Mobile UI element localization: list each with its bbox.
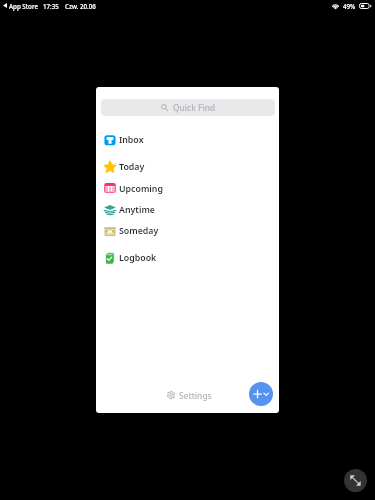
staticText: Anytime — [119, 204, 155, 216]
staticText: Inbox — [119, 134, 144, 146]
button[interactable]: Resize window — [344, 469, 367, 492]
button[interactable]: Quick Find — [101, 99, 275, 116]
button[interactable]: Upcoming — [96, 178, 279, 199]
staticText: Quick Find — [173, 102, 216, 113]
staticText: Settings — [179, 390, 212, 401]
staticText: Upcoming — [119, 183, 163, 195]
button[interactable]: Someday — [96, 220, 279, 241]
staticText: Czw. 20.06 — [65, 2, 96, 10]
button[interactable]: Settings — [167, 386, 212, 404]
staticText: Someday — [119, 225, 159, 237]
button[interactable]: Today — [96, 156, 279, 177]
button[interactable]: Logbook — [96, 247, 279, 268]
button[interactable]: Anytime — [96, 199, 279, 220]
staticText: App Store — [9, 2, 38, 10]
button[interactable]: Inbox — [96, 129, 279, 150]
button[interactable]: New to-do — [249, 382, 273, 406]
staticText: 17:35 — [43, 2, 59, 10]
staticText: 49% — [343, 2, 356, 10]
staticText: Logbook — [119, 252, 157, 264]
staticText: Today — [119, 161, 145, 173]
